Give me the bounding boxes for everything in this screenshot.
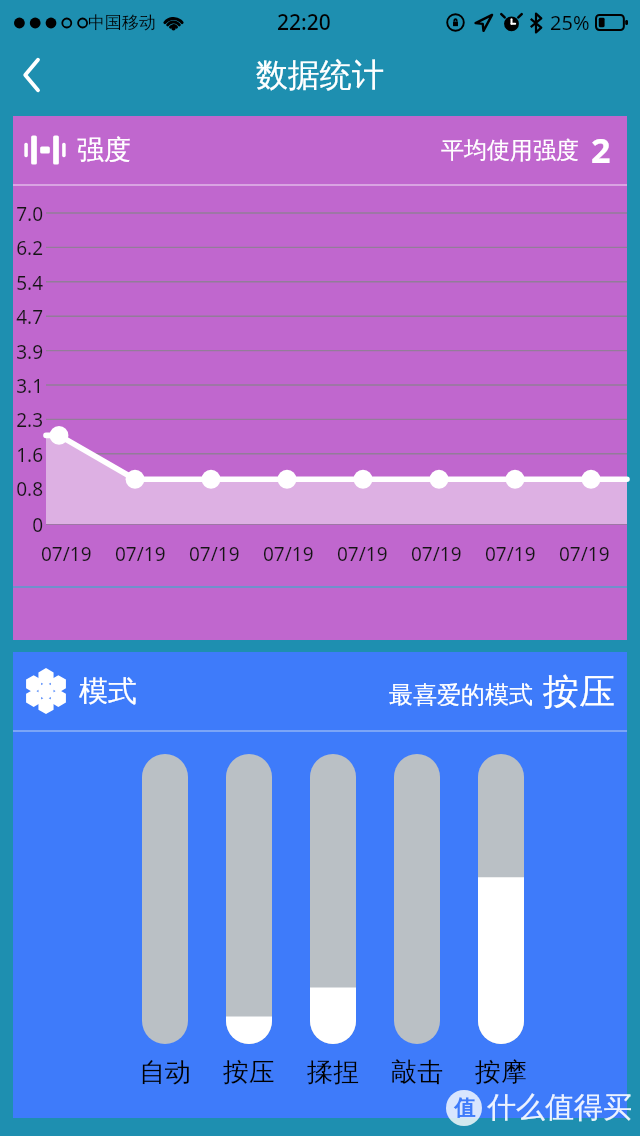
staticText: 模式	[79, 673, 137, 710]
staticText: 平均使用强度	[441, 136, 579, 165]
button[interactable]: 强度	[13, 116, 627, 640]
staticText: 中国移动	[88, 12, 156, 33]
staticText: 揉捏	[288, 1056, 378, 1089]
staticText: 07/19	[115, 541, 166, 567]
staticText: 敲击	[372, 1056, 462, 1089]
staticText: 07/19	[337, 541, 388, 567]
staticText: 值	[454, 1095, 475, 1121]
button[interactable]: Back	[0, 44, 64, 106]
staticText: 7.0	[13, 201, 43, 227]
staticText: 07/19	[189, 541, 240, 567]
staticText: 数据统计	[256, 55, 384, 95]
staticText: 07/19	[485, 541, 536, 567]
staticText: 0.8	[13, 476, 43, 502]
staticText: 自动	[120, 1056, 210, 1089]
staticText: 0	[13, 512, 43, 538]
staticText: 07/19	[41, 541, 92, 567]
staticText: 1.6	[13, 442, 43, 468]
staticText: 3.9	[13, 339, 43, 365]
staticText: 07/19	[559, 541, 610, 567]
staticText: 4.7	[13, 304, 43, 330]
staticText: 按压	[204, 1056, 294, 1089]
staticText: 5.4	[13, 270, 43, 296]
staticText: 强度	[77, 133, 131, 167]
button[interactable]: 模式	[13, 652, 627, 1118]
staticText: 按摩	[456, 1056, 546, 1089]
staticText: 07/19	[263, 541, 314, 567]
staticText: 2	[591, 127, 611, 173]
staticText: 3.1	[13, 373, 43, 399]
staticText: 最喜爱的模式	[389, 680, 533, 710]
staticText: 6.2	[13, 235, 43, 261]
staticText: 22:20	[277, 8, 331, 37]
staticText: 25%	[550, 9, 590, 36]
staticText: 什么值得买	[487, 1089, 632, 1126]
staticText: 07/19	[411, 541, 462, 567]
staticText: 2.3	[13, 407, 43, 433]
staticText: 按压	[543, 669, 615, 714]
